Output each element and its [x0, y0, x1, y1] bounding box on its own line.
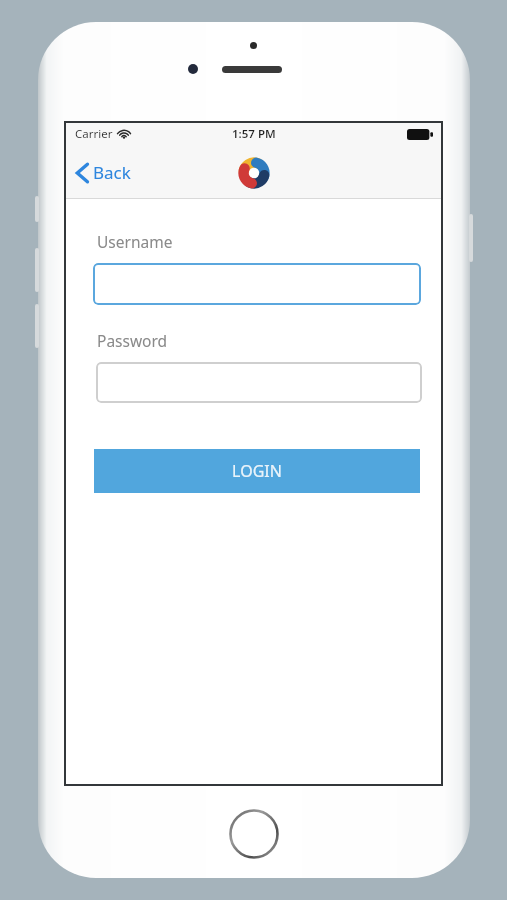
button[interactable]: Username input: [93, 263, 421, 305]
button[interactable]: LOGIN: [94, 449, 420, 493]
button[interactable]: Home: [229, 809, 279, 859]
button[interactable]: Password input: [96, 362, 422, 403]
staticText: Username: [97, 231, 173, 252]
button[interactable]: Back: [72, 155, 135, 190]
staticText: Back: [93, 161, 131, 184]
staticText: LOGIN: [232, 460, 282, 482]
staticText: Password: [97, 330, 168, 351]
staticText: Carrier: [75, 126, 113, 142]
button[interactable]: App logo: [237, 156, 271, 190]
staticText: 1:57 PM: [232, 126, 276, 142]
